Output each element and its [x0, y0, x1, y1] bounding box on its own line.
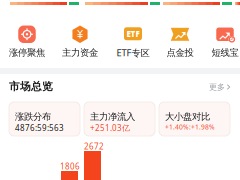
button[interactable]: 主力资金 — [54, 26, 106, 58]
staticText: 2672 — [84, 141, 104, 152]
staticText: 涨停聚焦 — [9, 47, 45, 58]
staticText: 1806 — [60, 161, 80, 172]
button[interactable]: 短线宝 — [199, 26, 240, 58]
staticText: 市场总览 — [9, 80, 53, 93]
button[interactable]: 涨停聚焦 — [1, 26, 53, 58]
staticText: 4876:59:563 — [15, 122, 64, 133]
staticText: 涨跌分布 — [15, 111, 51, 122]
staticText: 点金投 — [166, 47, 193, 58]
staticText: 更多 — [209, 82, 225, 92]
staticText: 短线宝 — [211, 47, 238, 58]
button[interactable]: 更多 — [205, 81, 231, 93]
staticText: 大小盘对比 — [165, 111, 210, 122]
button[interactable]: 主力净流入 — [84, 102, 155, 136]
button[interactable]: 点金投 — [154, 26, 206, 58]
staticText: 主力净流入 — [90, 111, 135, 122]
button[interactable]: 涨跌分布 — [9, 102, 80, 136]
staticText: ETF专区 — [116, 46, 149, 59]
staticText: +1.40%:+1.98% — [165, 122, 215, 131]
button[interactable]: ETF — [107, 26, 159, 58]
staticText: 主力资金 — [62, 47, 98, 58]
staticText: +251.03亿 — [90, 122, 130, 133]
staticText: ETF — [126, 28, 139, 39]
button[interactable]: 大小盘对比 — [159, 102, 230, 136]
